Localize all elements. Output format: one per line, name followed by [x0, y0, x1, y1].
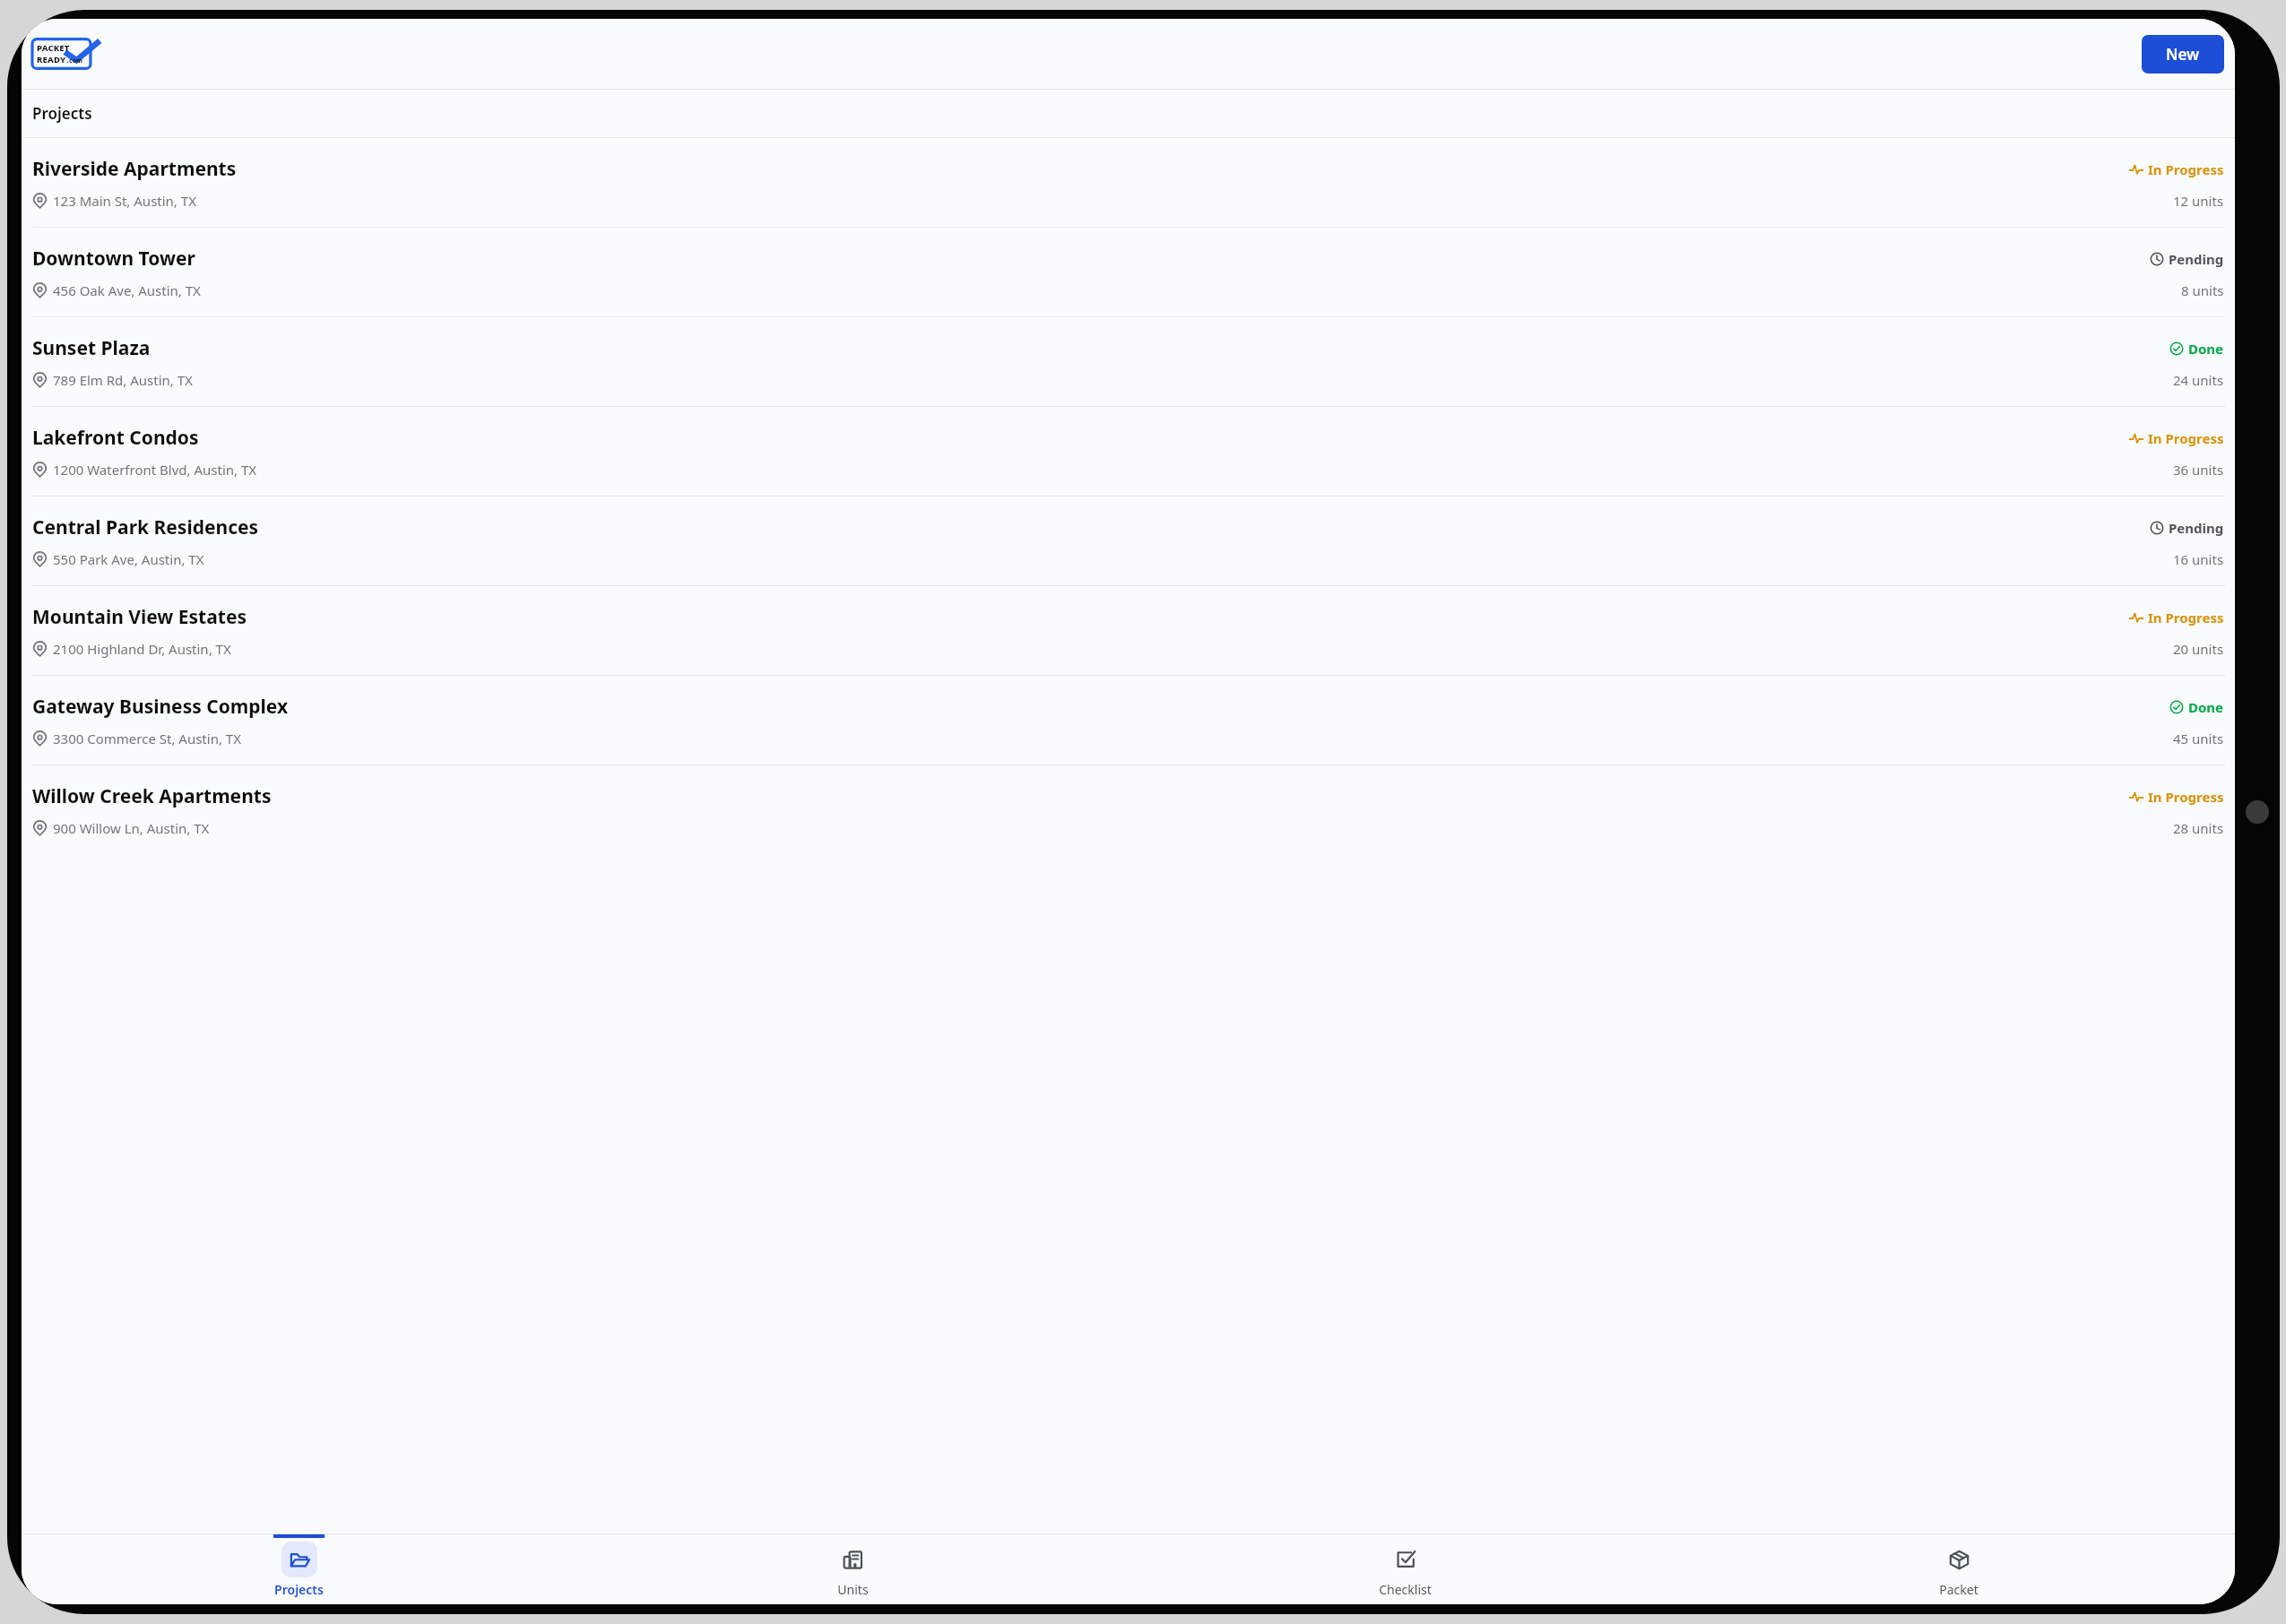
button[interactable]: Downtown Tower: [22, 228, 2235, 316]
staticText: Packet: [1939, 1581, 1979, 1598]
staticText: Mountain View Estates: [32, 604, 247, 630]
staticText: 456 Oak Ave, Austin, TX: [53, 281, 201, 299]
button[interactable]: Projects: [22, 1534, 576, 1604]
button[interactable]: New: [2142, 35, 2224, 73]
staticText: Riverside Apartments: [32, 156, 237, 182]
staticText: Projects: [274, 1581, 324, 1598]
staticText: In Progress: [2148, 429, 2224, 447]
staticText: Central Park Residences: [32, 514, 259, 540]
staticText: PACKET: [37, 42, 70, 54]
staticText: Pending: [2169, 250, 2224, 268]
staticText: In Progress: [2148, 160, 2224, 178]
staticText: 24 units: [2173, 371, 2224, 389]
button[interactable]: Checklist: [1129, 1534, 1682, 1604]
staticText: 28 units: [2173, 819, 2224, 837]
staticText: Checklist: [1379, 1581, 1432, 1598]
staticText: Lakefront Condos: [32, 425, 199, 451]
staticText: 3300 Commerce St, Austin, TX: [53, 730, 241, 747]
staticText: Done: [2188, 340, 2224, 358]
staticText: com: [69, 56, 83, 65]
staticText: 45 units: [2173, 730, 2224, 747]
staticText: 789 Elm Rd, Austin, TX: [53, 371, 193, 389]
staticText: READY: [37, 54, 66, 65]
staticText: Sunset Plaza: [32, 335, 151, 361]
staticText: In Progress: [2148, 609, 2224, 626]
staticText: Units: [837, 1581, 869, 1598]
staticText: Downtown Tower: [32, 246, 195, 272]
staticText: 12 units: [2173, 192, 2224, 210]
staticText: Pending: [2169, 519, 2224, 537]
staticText: Projects: [32, 103, 92, 124]
staticText: 16 units: [2173, 550, 2224, 568]
staticText: 36 units: [2173, 461, 2224, 479]
staticText: Gateway Business Complex: [32, 694, 289, 720]
staticText: Done: [2188, 698, 2224, 716]
button[interactable]: Central Park Residences: [22, 497, 2235, 585]
staticText: 2100 Highland Dr, Austin, TX: [53, 640, 231, 658]
staticText: In Progress: [2148, 788, 2224, 806]
staticText: 1200 Waterfront Blvd, Austin, TX: [53, 461, 257, 479]
button[interactable]: Willow Creek Apartments: [22, 765, 2235, 854]
staticText: Willow Creek Apartments: [32, 783, 272, 809]
button[interactable]: Packet: [1682, 1534, 2235, 1604]
staticText: .: [66, 54, 69, 65]
button[interactable]: Sunset Plaza: [22, 317, 2235, 406]
button[interactable]: PACKET: [32, 36, 100, 72]
button[interactable]: Lakefront Condos: [22, 407, 2235, 496]
button[interactable]: Gateway Business Complex: [22, 676, 2235, 764]
staticText: 8 units: [2181, 281, 2224, 299]
staticText: New: [2166, 44, 2200, 65]
staticText: 550 Park Ave, Austin, TX: [53, 550, 204, 568]
staticText: 900 Willow Ln, Austin, TX: [53, 819, 210, 837]
button[interactable]: Riverside Apartments: [22, 138, 2235, 227]
button[interactable]: Mountain View Estates: [22, 586, 2235, 675]
staticText: 20 units: [2173, 640, 2224, 658]
button[interactable]: Units: [576, 1534, 1129, 1604]
staticText: 123 Main St, Austin, TX: [53, 192, 196, 210]
